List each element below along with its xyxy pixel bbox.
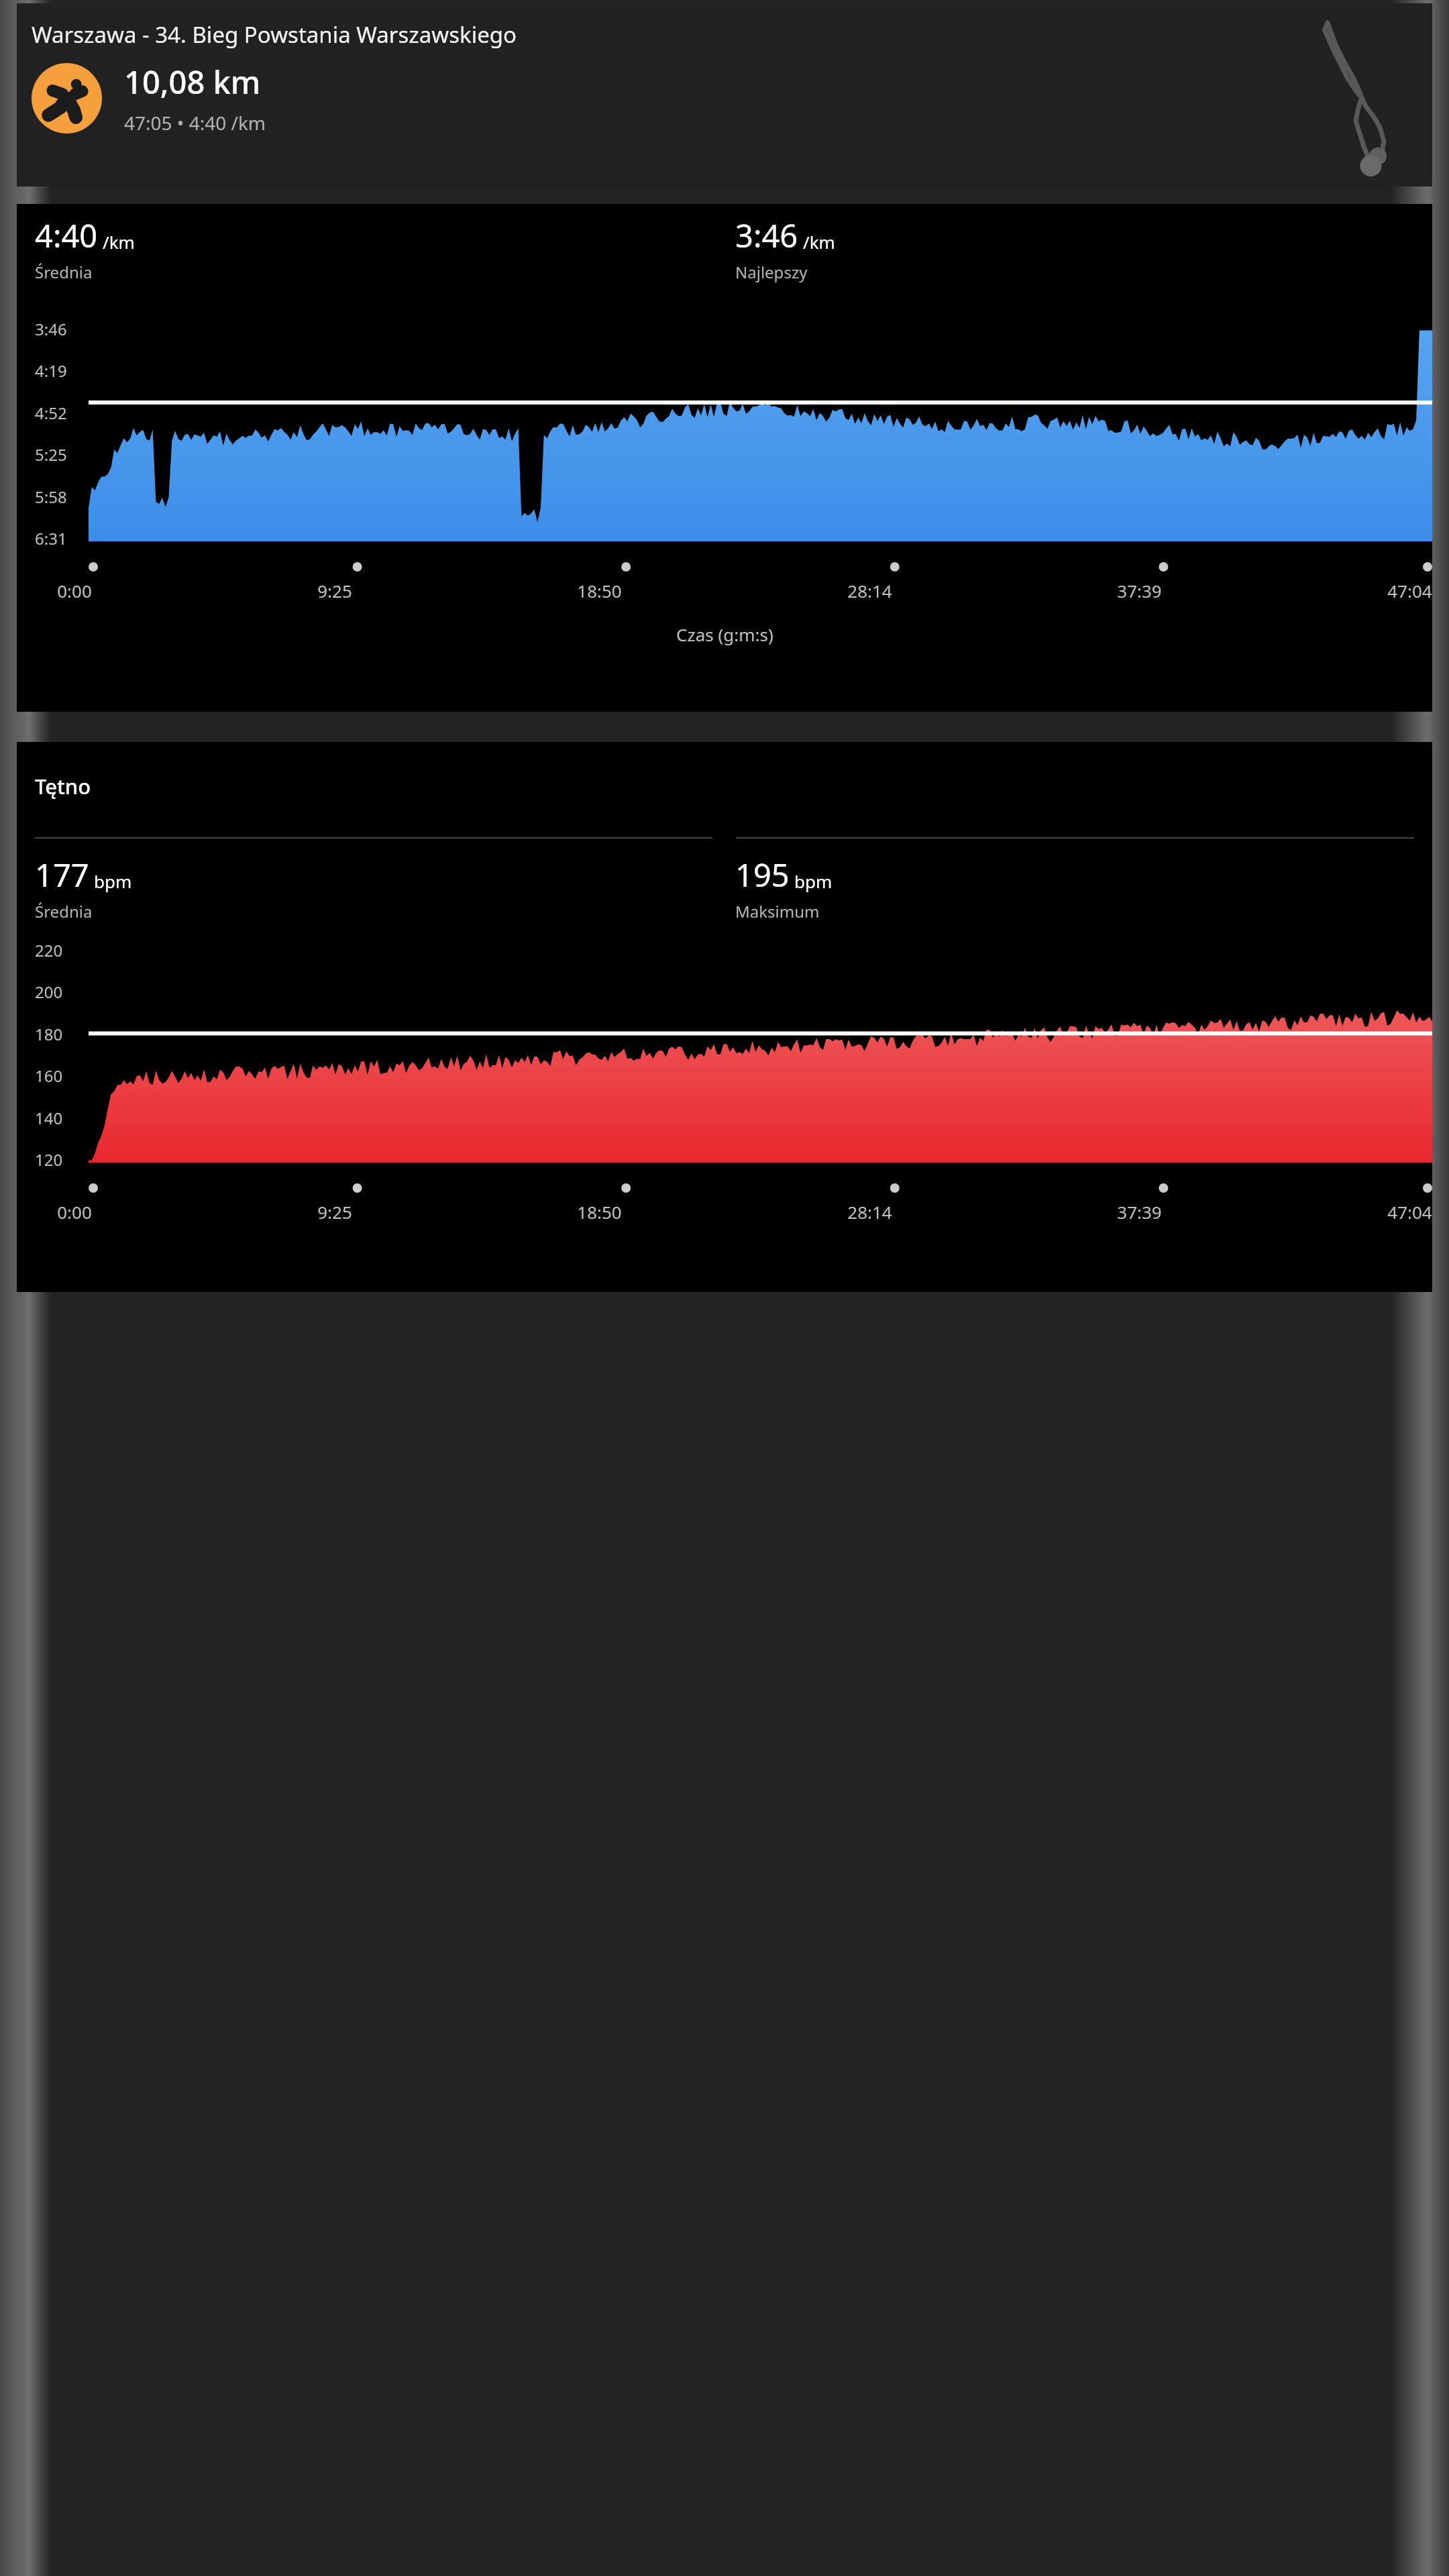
other: Route map [1311, 9, 1412, 183]
staticText: Najlepszy [735, 261, 808, 283]
staticText: /km [803, 230, 835, 254]
staticText: 9:25 [317, 579, 352, 602]
staticText: 220 [35, 939, 63, 961]
staticText: Średnia [35, 900, 93, 922]
staticText: 18:50 [577, 1200, 622, 1224]
staticText: bpm [94, 869, 132, 893]
staticText: 18:50 [577, 579, 622, 602]
staticText: bpm [794, 869, 833, 893]
staticText: 180 [35, 1023, 63, 1045]
staticText: 10,08 km [124, 60, 261, 103]
staticText: 177 [35, 853, 89, 896]
button[interactable]: Warszawa - 34. Bieg Powstania Warszawski… [17, 3, 1432, 186]
staticText: 120 [35, 1148, 63, 1171]
staticText: 47:04 [1387, 1200, 1432, 1224]
staticText: 195 [735, 853, 790, 896]
staticText: 200 [35, 981, 63, 1003]
staticText: 3:46 [35, 318, 67, 340]
staticText: 9:25 [317, 1200, 352, 1224]
staticText: 37:39 [1117, 1200, 1162, 1224]
staticText: 5:25 [35, 443, 67, 466]
staticText: 6:31 [35, 527, 67, 549]
staticText: Maksimum [735, 900, 820, 922]
button[interactable]: Tętno [17, 742, 1432, 1292]
staticText: 4:19 [35, 360, 67, 382]
staticText: 140 [35, 1107, 63, 1129]
button[interactable]: 4:40 [17, 204, 1432, 712]
staticText: Średnia [35, 261, 93, 283]
staticText: 37:39 [1117, 579, 1162, 602]
staticText: 0:00 [57, 1200, 92, 1224]
staticText: 4:52 [35, 402, 67, 424]
staticText: 47:05 • 4:40 /km [124, 110, 266, 136]
staticText: 3:46 [735, 214, 798, 257]
staticText: 0:00 [57, 579, 92, 602]
staticText: Tętno [35, 772, 91, 800]
staticText: 47:04 [1387, 579, 1432, 602]
staticText: 160 [35, 1065, 63, 1087]
staticText: Warszawa - 34. Bieg Powstania Warszawski… [32, 19, 517, 50]
staticText: 28:14 [847, 579, 892, 602]
staticText: /km [103, 230, 135, 254]
staticText: 28:14 [847, 1200, 892, 1224]
staticText: 4:40 [35, 214, 98, 257]
staticText: 5:58 [35, 486, 67, 508]
staticText: Czas (g:m:s) [676, 623, 773, 646]
